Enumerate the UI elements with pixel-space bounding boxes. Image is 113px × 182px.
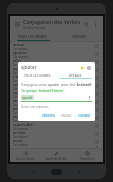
- button[interactable]: agacer: [10, 66, 103, 74]
- button[interactable]: SUIVANT: [76, 113, 93, 119]
- staticText: SUIVANT: [78, 114, 91, 118]
- button[interactable]: s'asseoir: [10, 74, 103, 82]
- staticText: 1er groupe: [13, 103, 28, 106]
- staticText: 1er groupe: [13, 87, 28, 90]
- staticText: avoir: [13, 138, 23, 143]
- staticText: aller: [13, 58, 22, 63]
- staticText: 1er groupe: [13, 63, 28, 66]
- button[interactable]: Favorite: [94, 107, 100, 113]
- staticText: armer: [13, 42, 25, 47]
- staticText: Conjuguez votre: [21, 82, 48, 87]
- button[interactable]: avoir: [10, 138, 103, 146]
- staticText: apprendre: [13, 82, 34, 87]
- button[interactable]: Favorite: [94, 51, 100, 57]
- button[interactable]: Favorite: [94, 146, 100, 148]
- staticText: Écrire une réponse...: [21, 105, 50, 109]
- button[interactable]: accepter: [10, 106, 103, 114]
- staticText: ajouter: [48, 82, 60, 87]
- staticText: 1er groupe: [13, 143, 28, 146]
- button[interactable]: More options: [91, 20, 100, 29]
- button[interactable]: Settings: [85, 64, 92, 71]
- staticText: DETAILS: [69, 74, 82, 78]
- staticText: Conjugaison des Verbes: [23, 19, 81, 26]
- staticText: ajouter: [13, 50, 27, 55]
- button[interactable]: Favorite: [94, 43, 100, 49]
- staticText: Tous les Verbes: [16, 157, 35, 161]
- staticText: 1er groupe · Indicatif Présent: [21, 89, 63, 93]
- staticText: Indicatif Présent: [77, 82, 92, 87]
- button[interactable]: abaisser: [10, 114, 103, 122]
- button[interactable]: Favorite: [94, 115, 100, 121]
- button[interactable]: aller: [10, 58, 103, 66]
- staticText: 1er groupe: [13, 79, 28, 82]
- staticText: agacer: [13, 66, 27, 71]
- button[interactable]: Apprendre Verbes: [41, 149, 72, 162]
- staticText: FAVORIS: [72, 34, 87, 39]
- staticText: PASSER: [61, 114, 72, 118]
- staticText: s'asseoir: [13, 74, 30, 79]
- button[interactable]: Menu: [13, 20, 21, 28]
- button[interactable]: DETAILS: [56, 72, 95, 79]
- staticText: ajouté: [22, 95, 33, 100]
- button[interactable]: aimer: [10, 98, 103, 106]
- staticText: Verbes Français: [23, 26, 46, 30]
- button[interactable]: armer: [10, 42, 103, 50]
- button[interactable]: ajouter: [10, 50, 103, 58]
- staticText: TOUS LES VERBES: [18, 34, 48, 39]
- button[interactable]: FAVORIS: [56, 32, 103, 41]
- staticText: aimer: [13, 98, 25, 103]
- button[interactable]: PASSER: [59, 113, 74, 119]
- button[interactable]: Favorite: [94, 91, 100, 97]
- button[interactable]: Favorite: [94, 59, 100, 65]
- button[interactable]: apprendre: [10, 122, 103, 130]
- staticText: abaisser: [13, 114, 30, 119]
- staticText: 1er groupe: [13, 111, 28, 114]
- button[interactable]: apprendre: [10, 82, 103, 90]
- staticText: TOUS LES VERBES: [24, 74, 51, 78]
- staticText: 1er groupe: [13, 71, 28, 74]
- button[interactable]: Favorite: [94, 67, 100, 73]
- button[interactable]: Favorite: [94, 131, 100, 137]
- button[interactable]: VÉRIFIER: [40, 113, 57, 119]
- button[interactable]: Favorite: [94, 83, 100, 89]
- staticText: appeler: [13, 90, 28, 95]
- staticText: 1er groupe: [13, 127, 28, 130]
- staticText: ajouter: [21, 64, 78, 70]
- button[interactable]: Favorite: [94, 75, 100, 81]
- button[interactable]: Search: [82, 20, 91, 29]
- button[interactable]: Favorite: [94, 139, 100, 145]
- button[interactable]: Favorite: [78, 64, 85, 71]
- button[interactable]: Microphone: [87, 95, 92, 100]
- staticText: arriver: [13, 130, 26, 135]
- button[interactable]: Favorite: [94, 99, 100, 105]
- button[interactable]: TOUS LES VERBES: [10, 32, 56, 41]
- button[interactable]: appeler: [10, 90, 103, 98]
- button[interactable]: TOUS LES VERBES: [18, 72, 56, 79]
- staticText: 1er groupe: [13, 135, 28, 138]
- staticText: 1er groupe: [13, 47, 28, 50]
- staticText: Paramètres: [80, 157, 95, 161]
- staticText: Apprendre Verbes: [45, 157, 68, 161]
- staticText: 1er groupe: [13, 55, 28, 58]
- staticText: VÉRIFIER: [42, 114, 55, 118]
- staticText: 1er groupe: [13, 95, 28, 98]
- button[interactable]: Favorite: [94, 123, 100, 129]
- staticText: apprendre: [13, 122, 34, 127]
- staticText: 1er groupe: [13, 119, 28, 122]
- button[interactable]: arriver: [10, 130, 103, 138]
- staticText: pour finir: [60, 82, 77, 87]
- button[interactable]: Tous les Verbes: [10, 149, 41, 162]
- staticText: accepter: [13, 106, 30, 111]
- button[interactable]: Paramètres: [72, 149, 103, 162]
